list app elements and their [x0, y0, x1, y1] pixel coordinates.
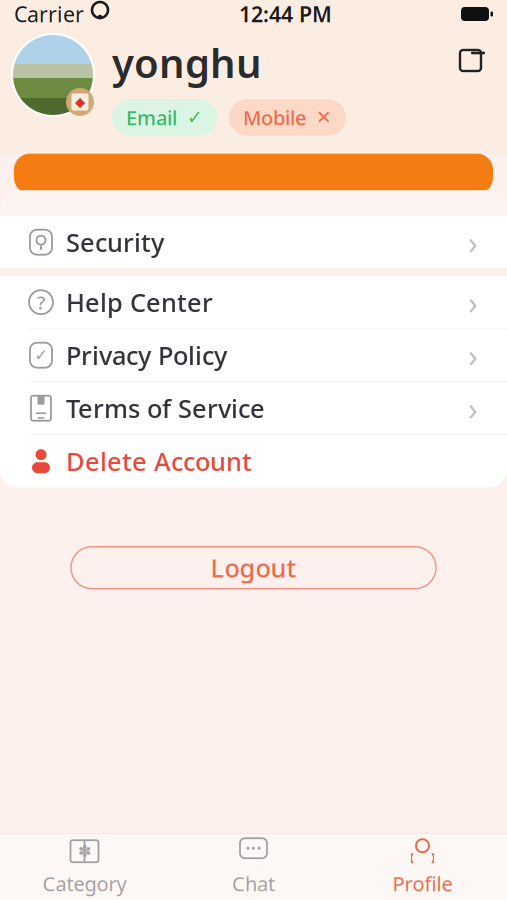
staticText: 12:44 PM — [239, 0, 332, 28]
staticText: Terms of Service — [66, 391, 265, 425]
staticText: › — [468, 387, 478, 429]
button[interactable]: ? — [0, 276, 507, 328]
button[interactable]: ✽ — [0, 834, 169, 900]
staticText: Chat — [232, 870, 275, 897]
staticText: › — [468, 221, 478, 263]
staticText: ◆ — [75, 94, 85, 109]
button[interactable]: Terms of Service — [0, 382, 507, 434]
staticText: ? — [37, 290, 45, 315]
staticText: Security — [66, 225, 164, 259]
staticText: Category — [42, 870, 126, 897]
button[interactable]: Security — [0, 216, 507, 268]
staticText: › — [468, 281, 478, 323]
staticText: ✽ — [78, 842, 91, 860]
staticText: Carrier — [14, 0, 84, 28]
staticText: ✓ — [34, 346, 47, 364]
button[interactable]: Chat — [169, 834, 338, 900]
staticText: Logout — [210, 551, 296, 584]
staticText: Help Center — [66, 285, 213, 319]
button[interactable]: ✓ — [0, 329, 507, 381]
button[interactable]: Logout — [71, 547, 436, 589]
button[interactable]: Profile — [338, 834, 507, 900]
staticText: ✓ — [187, 107, 203, 128]
staticText: yonghu — [112, 36, 262, 89]
staticText: Mobile — [243, 104, 306, 131]
staticText: Profile — [392, 870, 452, 897]
staticText: Email — [126, 104, 177, 131]
button[interactable]: Edit profile — [451, 36, 495, 80]
staticText: › — [468, 334, 478, 376]
staticText: Delete Account — [66, 444, 252, 478]
staticText: Privacy Policy — [66, 338, 227, 372]
staticText: ✕ — [316, 107, 332, 128]
button[interactable]: Delete Account — [0, 435, 507, 487]
